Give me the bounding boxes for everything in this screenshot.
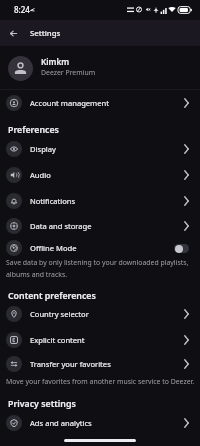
staticText: Country selector [30, 309, 89, 319]
staticText: Kimkm [41, 56, 70, 67]
staticText: Settings [30, 28, 61, 39]
button[interactable]: Back [0, 21, 26, 46]
staticText: Offline Mode [30, 243, 77, 253]
staticText: Move your favorites from another music s… [6, 377, 195, 386]
button[interactable]: Country selector [0, 301, 200, 327]
staticText: Explicit content [30, 335, 85, 345]
staticText: Transfer your favorites [30, 359, 111, 369]
staticText: Ads and analytics [30, 418, 92, 428]
staticText: Content preferences [8, 290, 96, 302]
staticText: Deezer Premium [41, 68, 96, 77]
button[interactable]: Ads and analytics [0, 410, 200, 436]
button[interactable]: Account management [0, 90, 200, 116]
staticText: Audio [30, 170, 51, 180]
button[interactable]: Data and storage [0, 213, 200, 239]
staticText: Privacy settings [8, 398, 76, 410]
button[interactable]: Transfer your favorites [0, 351, 200, 377]
button[interactable]: Notifications [0, 188, 200, 214]
button[interactable]: Kimkm [0, 47, 200, 89]
button[interactable]: Display [0, 136, 200, 162]
staticText: Save data by only listening to your down… [6, 258, 198, 279]
staticText: 8:24 [14, 4, 30, 15]
button[interactable]: Audio [0, 162, 200, 188]
button[interactable]: Offline Mode [0, 235, 200, 261]
staticText: Account management [30, 98, 109, 108]
staticText: Notifications [30, 196, 76, 206]
button[interactable]: Explicit content [0, 327, 200, 353]
staticText: Preferences [8, 124, 59, 136]
staticText: Data and storage [30, 221, 92, 231]
staticText: Display [30, 144, 56, 154]
